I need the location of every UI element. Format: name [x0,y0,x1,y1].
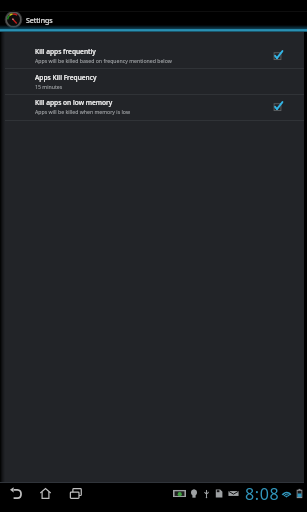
button[interactable]: Kill apps on low memory [0,94,304,119]
button[interactable]: Home [35,484,56,503]
button[interactable]: Toggle Kill apps on low memory [269,94,304,119]
button[interactable]: Recent apps [65,484,86,503]
staticText: 8:08 [245,483,280,503]
staticText: Apps Kill Frequency [35,73,97,82]
staticText: Apps will be killed when memory is low [35,108,130,115]
staticText: Settings [26,16,53,26]
staticText: Kill apps frequently [35,47,96,56]
button[interactable]: Back [5,484,26,503]
staticText: Kill apps on low memory [35,98,113,107]
button[interactable]: Status and notifications [173,483,303,503]
button[interactable]: Kill apps frequently [0,43,304,68]
button[interactable]: Apps Kill Frequency [0,69,304,94]
button[interactable]: Settings [5,0,53,29]
staticText: 15 minutes [35,83,63,90]
staticText: Apps will be killed based on frequency m… [35,57,172,64]
button[interactable]: Toggle Kill apps frequently [269,43,304,68]
